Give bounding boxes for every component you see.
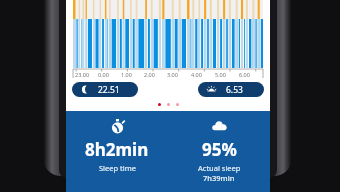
staticText: 23.00 [75,71,90,78]
staticText: 95% [202,138,237,161]
button[interactable]: Bed time [72,82,138,97]
staticText: 2.00 [144,71,155,78]
button[interactable]: Wake up time [198,82,264,97]
staticText: 7h39min [203,173,235,183]
staticText: 6.00 [239,71,250,78]
staticText: 8h2min [85,138,149,161]
staticText: 4.00 [191,71,202,78]
staticText: 22.51 [98,84,120,96]
staticText: 3.00 [167,71,178,78]
other: Wake up time [207,85,216,94]
staticText: Sleep time [99,163,136,173]
staticText: 1.00 [121,71,132,78]
other: Bed time [81,85,90,94]
button[interactable]: Sleep time [66,118,168,192]
staticText: 0.00 [98,71,109,78]
staticText: 6.53 [226,84,243,96]
staticText: Actual sleep [198,163,241,173]
staticText: 5.00 [215,71,226,78]
button[interactable]: Actual sleep [168,118,270,192]
